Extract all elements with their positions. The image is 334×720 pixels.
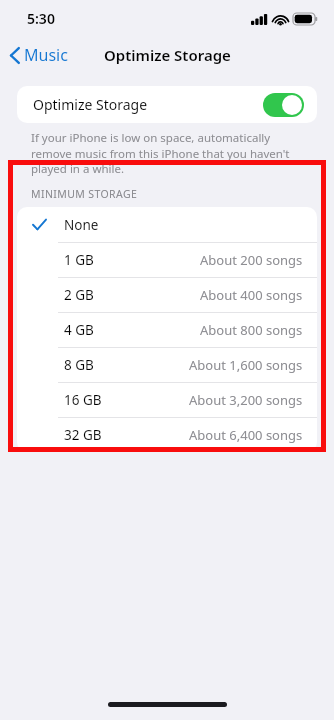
staticText: About 1,600 songs — [189, 356, 303, 374]
button[interactable]: Music — [0, 38, 76, 72]
button[interactable]: 1 GB — [17, 242, 317, 277]
staticText: None — [64, 216, 99, 234]
staticText: About 800 songs — [200, 321, 303, 339]
button[interactable]: 16 GB — [17, 382, 317, 417]
button[interactable]: 32 GB — [17, 417, 317, 452]
button[interactable]: Optimize Storage toggle — [263, 93, 304, 117]
staticText: Music — [24, 44, 68, 66]
button[interactable]: 2 GB — [17, 277, 317, 312]
staticText: 8 GB — [64, 356, 94, 374]
staticText: 2 GB — [64, 286, 94, 304]
button[interactable]: None — [17, 207, 317, 242]
staticText: 1 GB — [64, 251, 94, 269]
staticText: 16 GB — [64, 391, 102, 409]
staticText: 32 GB — [64, 426, 102, 444]
staticText: MINIMUM STORAGE — [31, 187, 138, 201]
staticText: About 6,400 songs — [189, 426, 303, 444]
staticText: About 3,200 songs — [189, 391, 303, 409]
staticText: About 400 songs — [200, 286, 303, 304]
staticText: 4 GB — [64, 321, 94, 339]
staticText: If your iPhone is low on space, automati… — [31, 130, 306, 176]
staticText: 5:30 — [27, 9, 55, 28]
staticText: About 200 songs — [200, 251, 303, 269]
button[interactable]: 8 GB — [17, 347, 317, 382]
button[interactable]: Optimize Storage — [17, 86, 317, 123]
button[interactable]: 4 GB — [17, 312, 317, 347]
staticText: Optimize Storage — [33, 95, 148, 114]
staticText: Optimize Storage — [104, 45, 231, 65]
